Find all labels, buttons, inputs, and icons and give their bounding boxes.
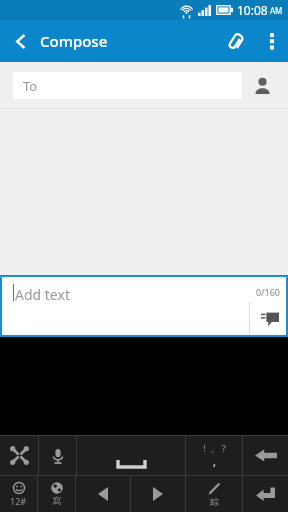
staticText: ,: [213, 454, 216, 469]
button[interactable]: Space: [77, 436, 185, 475]
button[interactable]: Add text: [0, 275, 288, 337]
button[interactable]: Message type: [256, 304, 283, 331]
staticText: 0/160: [256, 286, 280, 298]
staticText: 綜: [210, 496, 219, 507]
button[interactable]: Back: [0, 20, 40, 62]
button[interactable]: Backspace: [243, 436, 288, 475]
staticText: ! 。 ?: [203, 442, 226, 454]
button[interactable]: Symbols: [0, 476, 37, 512]
button[interactable]: Move cursor right: [131, 476, 185, 512]
button[interactable]: Move cursor left: [76, 476, 130, 512]
staticText: To: [23, 77, 38, 95]
button[interactable]: Handwriting mode: [186, 476, 242, 512]
button[interactable]: Change input language: [38, 476, 75, 512]
staticText: AM: [270, 5, 283, 16]
button[interactable]: Attach: [214, 20, 256, 62]
staticText: 寫: [52, 495, 61, 506]
button[interactable]: Choose contact: [242, 62, 282, 108]
button[interactable]: Punctuation: [186, 436, 242, 475]
button[interactable]: More options: [256, 20, 288, 62]
staticText: 10:08: [237, 2, 268, 18]
button[interactable]: To: [13, 72, 242, 99]
staticText: Compose: [40, 31, 108, 51]
staticText: 12#: [10, 495, 27, 507]
button[interactable]: Voice input: [39, 436, 76, 475]
button[interactable]: Resize keyboard: [0, 436, 38, 475]
staticText: Add text: [15, 285, 70, 304]
button[interactable]: Enter: [243, 476, 288, 512]
